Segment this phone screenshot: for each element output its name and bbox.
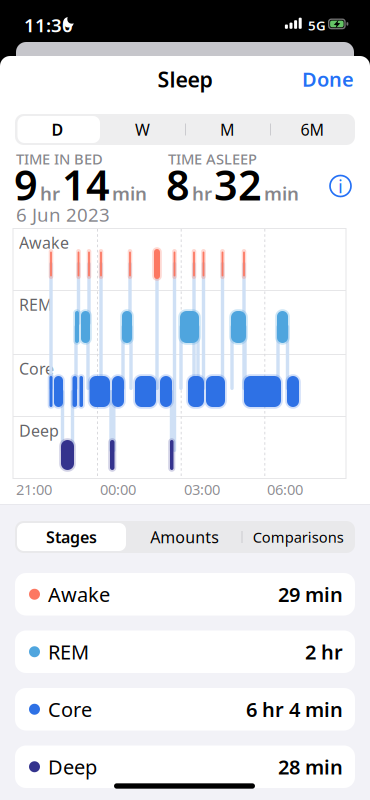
button[interactable]: W — [100, 114, 185, 145]
staticText: 11:30 — [24, 12, 73, 37]
staticText: 14 — [62, 157, 110, 212]
staticText: 00:00 — [100, 479, 136, 499]
staticText: 5G — [308, 16, 326, 34]
staticText: W — [135, 119, 150, 140]
staticText: REM — [19, 294, 53, 315]
button[interactable]: About Sleep — [326, 172, 354, 200]
button[interactable]: M — [185, 114, 270, 145]
staticText: 2 hr — [305, 638, 343, 665]
button[interactable]: Comparisons — [242, 521, 355, 553]
staticText: REM — [48, 638, 89, 665]
staticText: M — [220, 119, 235, 140]
staticText: Sleep — [157, 65, 212, 93]
staticText: Core — [19, 358, 54, 379]
staticText: Deep — [48, 753, 97, 780]
staticText: 32 — [214, 157, 262, 212]
staticText: Awake — [48, 581, 110, 608]
button[interactable]: Amounts — [128, 521, 241, 553]
staticText: 6M — [300, 119, 324, 140]
button[interactable]: Done — [284, 65, 354, 93]
staticText: Amounts — [150, 526, 219, 548]
staticText: D — [51, 119, 63, 140]
staticText: 6 hr 4 min — [246, 696, 343, 723]
staticText: Core — [48, 696, 92, 723]
staticText: TIME ASLEEP — [168, 149, 257, 168]
staticText: 03:00 — [184, 479, 220, 499]
staticText: min — [264, 181, 299, 206]
staticText: 28 min — [278, 753, 343, 780]
staticText: Comparisons — [253, 527, 344, 547]
staticText: hr — [192, 181, 212, 206]
staticText: 9 — [14, 157, 38, 212]
staticText: TIME IN BED — [16, 149, 103, 168]
staticText: Deep — [19, 420, 59, 441]
staticText: 21:00 — [16, 479, 52, 499]
staticText: 06:00 — [267, 479, 303, 499]
staticText: 29 min — [278, 581, 343, 608]
button[interactable]: 6M — [270, 114, 355, 145]
staticText: min — [112, 181, 147, 206]
button[interactable]: Stages — [15, 521, 128, 553]
staticText: Awake — [19, 232, 69, 253]
staticText: 8 — [166, 157, 190, 212]
staticText: Done — [302, 66, 354, 92]
staticText: 6 Jun 2023 — [16, 202, 110, 227]
staticText: Stages — [46, 526, 97, 548]
button[interactable]: D — [15, 114, 100, 145]
staticText: hr — [40, 181, 60, 206]
staticText: i — [338, 174, 343, 198]
